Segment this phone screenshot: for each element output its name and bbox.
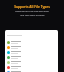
staticText: and save them instantly — [20, 14, 45, 17]
staticText: Download any file type with ease — [15, 10, 49, 13]
staticText: Supports All File Types — [14, 5, 50, 9]
button[interactable] — [5, 55, 58, 60]
button[interactable] — [5, 50, 58, 55]
button[interactable] — [5, 45, 58, 50]
button[interactable] — [5, 70, 58, 72]
button[interactable] — [5, 60, 58, 65]
button[interactable] — [5, 65, 58, 70]
button[interactable] — [5, 40, 58, 45]
